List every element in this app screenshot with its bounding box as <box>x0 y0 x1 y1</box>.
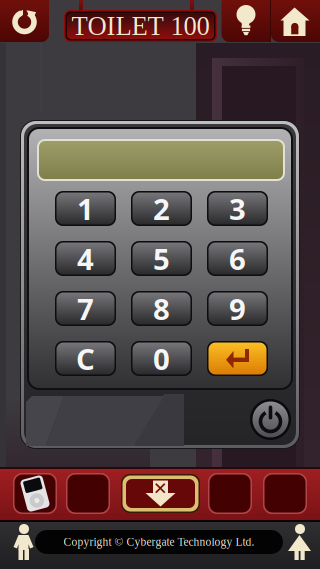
button[interactable]: Inventory slot <box>263 473 307 514</box>
staticText: TOILET 100 <box>71 11 209 41</box>
button[interactable]: Home <box>271 0 320 42</box>
staticText: 0 <box>153 339 170 378</box>
button[interactable]: Hint <box>221 0 271 42</box>
button[interactable]: 1 <box>55 191 116 226</box>
button[interactable]: Restart <box>0 0 49 42</box>
button[interactable] <box>207 341 268 376</box>
button[interactable]: 0 <box>131 341 192 376</box>
staticText: 2 <box>153 189 170 228</box>
button[interactable]: 6 <box>207 241 268 276</box>
button[interactable]: Power <box>250 399 291 440</box>
button[interactable]: Inventory slot <box>13 473 57 514</box>
staticText: 6 <box>229 239 246 278</box>
button[interactable]: 3 <box>207 191 268 226</box>
button[interactable]: 4 <box>55 241 116 276</box>
staticText: 4 <box>77 239 94 278</box>
staticText: ✕ <box>153 479 168 498</box>
button[interactable]: TOILET 100 <box>64 10 217 42</box>
staticText: 8 <box>153 289 170 328</box>
button[interactable]: 7 <box>55 291 116 326</box>
staticText: 3 <box>229 189 246 228</box>
staticText: 9 <box>229 289 246 328</box>
button[interactable]: Inventory slot <box>208 473 252 514</box>
staticText: 7 <box>77 289 94 328</box>
staticText: C <box>76 339 95 378</box>
button[interactable]: Close panel <box>121 474 200 513</box>
staticText: Copyright © Cybergate Technology Ltd. <box>63 536 254 548</box>
button[interactable]: C <box>55 341 116 376</box>
staticText: 5 <box>153 239 170 278</box>
staticText: 1 <box>77 189 94 228</box>
button[interactable]: 8 <box>131 291 192 326</box>
button[interactable]: Inventory slot <box>66 473 110 514</box>
button[interactable]: 5 <box>131 241 192 276</box>
button[interactable]: 9 <box>207 291 268 326</box>
button[interactable]: 2 <box>131 191 192 226</box>
